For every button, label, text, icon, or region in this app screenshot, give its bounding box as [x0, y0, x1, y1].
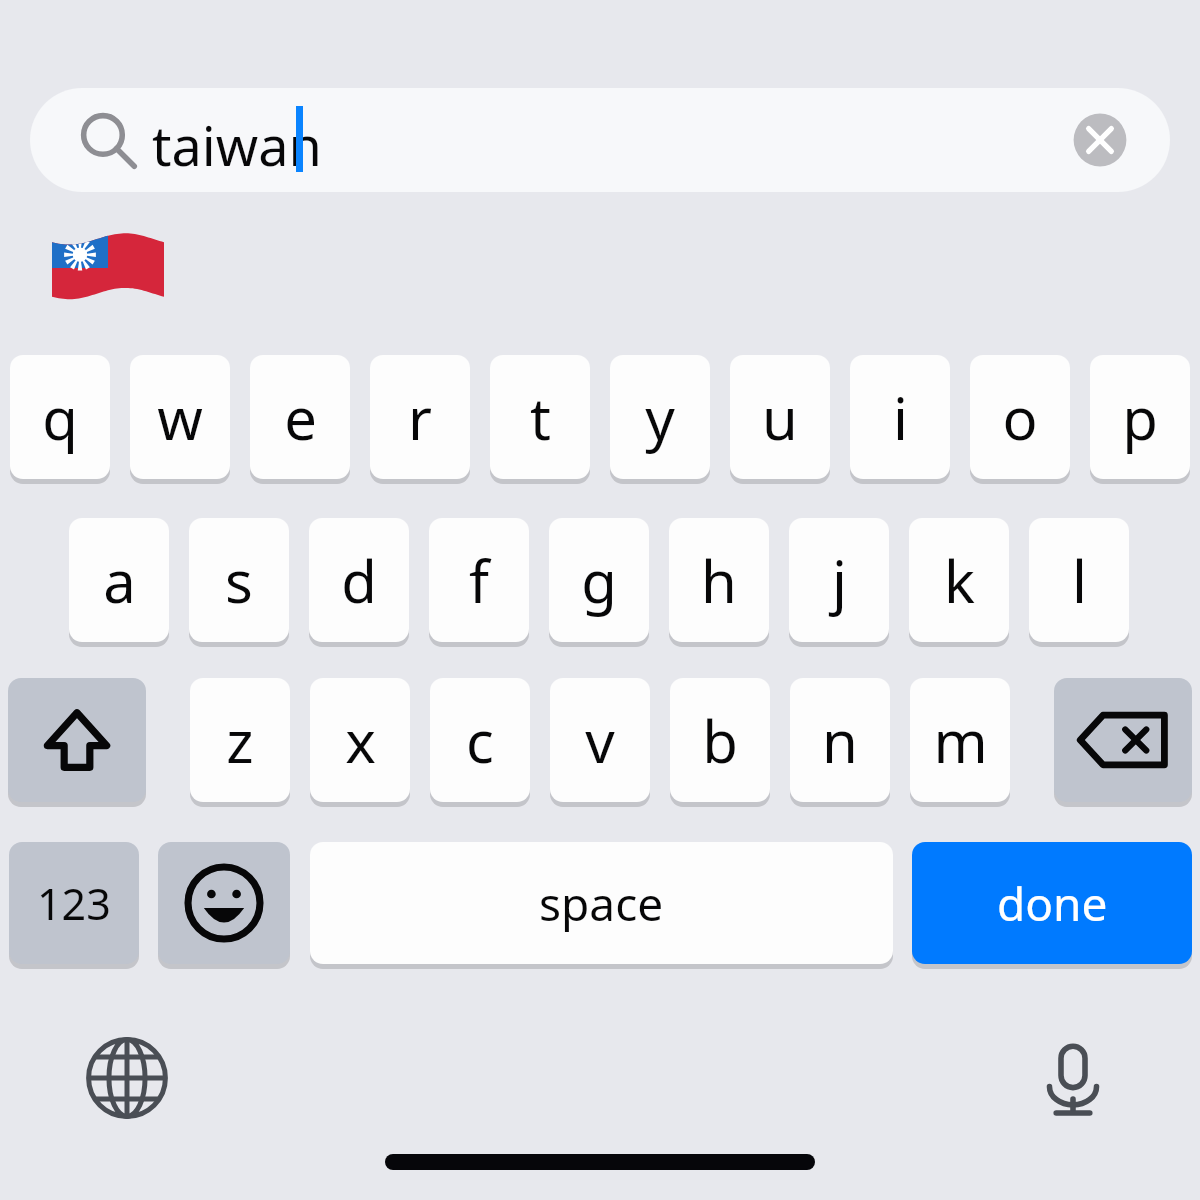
staticText: s: [225, 541, 253, 620]
button[interactable]: a: [69, 518, 169, 642]
button[interactable]: v: [550, 678, 650, 802]
staticText: l: [1072, 541, 1087, 620]
button[interactable]: k: [909, 518, 1009, 642]
button[interactable]: done: [912, 842, 1192, 964]
staticText: o: [1002, 378, 1038, 457]
button[interactable]: o: [970, 355, 1070, 479]
staticText: 123: [37, 874, 111, 933]
button[interactable]: space: [310, 842, 893, 964]
staticText: u: [762, 378, 798, 457]
staticText: j: [832, 541, 847, 620]
button[interactable]: u: [730, 355, 830, 479]
button[interactable]: h: [669, 518, 769, 642]
button[interactable]: g: [549, 518, 649, 642]
button[interactable]: s: [189, 518, 289, 642]
staticText: n: [822, 701, 858, 780]
button[interactable]: n: [790, 678, 890, 802]
staticText: x: [345, 701, 376, 780]
staticText: w: [157, 378, 203, 457]
button[interactable]: Dictation: [1025, 1030, 1121, 1126]
button[interactable]: p: [1090, 355, 1190, 479]
staticText: e: [284, 378, 317, 457]
staticText: b: [702, 701, 738, 780]
staticText: v: [585, 701, 615, 780]
staticText: t: [530, 378, 551, 457]
button[interactable]: b: [670, 678, 770, 802]
staticText: d: [341, 541, 377, 620]
button[interactable]: y: [610, 355, 710, 479]
button[interactable]: w: [130, 355, 230, 479]
button[interactable]: f: [429, 518, 529, 642]
staticText: z: [226, 701, 254, 780]
button[interactable]: z: [190, 678, 290, 802]
button[interactable]: t: [490, 355, 590, 479]
button[interactable]: x: [310, 678, 410, 802]
button[interactable]: i: [850, 355, 950, 479]
button[interactable]: Backspace: [1054, 678, 1192, 802]
staticText: k: [944, 541, 975, 620]
button[interactable]: Switch keyboard language: [79, 1030, 175, 1126]
button[interactable]: q: [10, 355, 110, 479]
staticText: q: [42, 378, 78, 457]
button[interactable]: taiwan: [30, 88, 1170, 192]
button[interactable]: d: [309, 518, 409, 642]
button[interactable]: r: [370, 355, 470, 479]
staticText: m: [933, 701, 988, 780]
button[interactable]: m: [910, 678, 1010, 802]
staticText: space: [539, 872, 664, 935]
staticText: r: [408, 378, 432, 457]
button[interactable]: c: [430, 678, 530, 802]
staticText: g: [581, 541, 617, 620]
staticText: a: [103, 541, 136, 620]
staticText: taiwan: [152, 108, 322, 182]
button[interactable]: Clear text: [1070, 110, 1130, 170]
button[interactable]: Taiwan flag emoji: [44, 222, 172, 314]
staticText: i: [893, 378, 908, 457]
staticText: p: [1122, 378, 1158, 457]
staticText: h: [701, 541, 737, 620]
button[interactable]: e: [250, 355, 350, 479]
button[interactable]: j: [789, 518, 889, 642]
staticText: f: [469, 541, 489, 620]
button[interactable]: Shift: [8, 678, 146, 802]
button[interactable]: 123: [9, 842, 139, 964]
button[interactable]: Emoji: [158, 842, 290, 964]
staticText: c: [466, 701, 494, 780]
staticText: y: [645, 378, 675, 457]
button[interactable]: l: [1029, 518, 1129, 642]
staticText: done: [997, 872, 1108, 935]
